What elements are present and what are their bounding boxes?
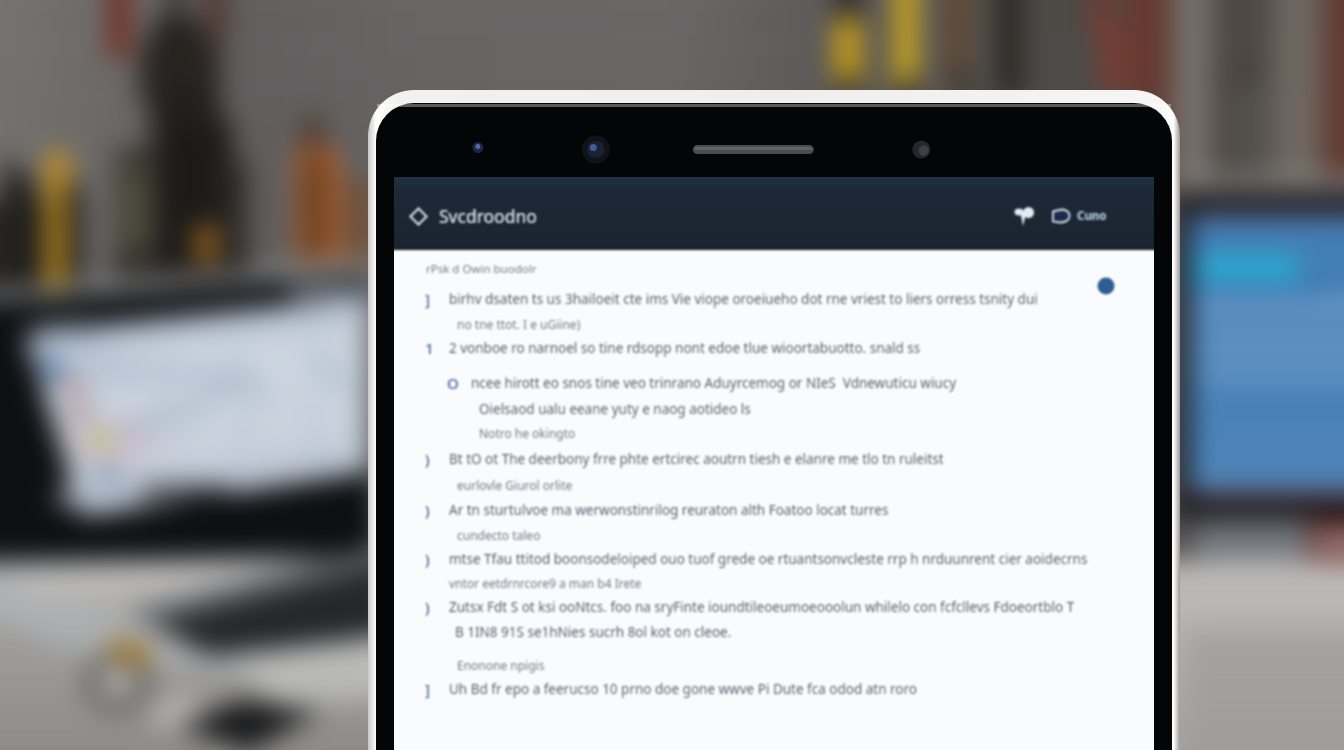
staticText: Bt tO ot The deerbony frre phte ertcirec… (449, 450, 944, 468)
staticText: Svcdroodno (439, 204, 537, 228)
staticText: ) (425, 500, 430, 520)
staticText: Zutsx Fdt S ot ksi ooNtcs. foo na sryFin… (449, 598, 1075, 616)
button[interactable]: O (425, 373, 1142, 393)
button[interactable]: B 1IN8 91S se1hNies sucrh 8ol kot on cle… (425, 623, 1142, 641)
staticText: ] (425, 289, 430, 309)
button[interactable]: ) (425, 549, 1142, 569)
staticText: Enonone npigis (457, 657, 545, 673)
button[interactable]: vntor eetdrnrcore9 a man b4 Irete (425, 575, 1142, 591)
staticText: mtse Tfau ttitod boonsodeloiped ouo tuof… (449, 550, 1088, 568)
button[interactable]: Enonone npigis (425, 657, 1142, 673)
staticText: vntor eetdrnrcore9 a man b4 Irete (449, 575, 642, 591)
button[interactable]: Oielsaod ualu eeane yuty e naog aotideo … (425, 400, 1142, 418)
button[interactable]: ) (425, 449, 1142, 469)
button[interactable]: 1 (425, 338, 1142, 358)
button[interactable]: cundecto taleo (425, 527, 1142, 543)
button[interactable]: Notro he okingto (425, 425, 1142, 441)
staticText: ncee hirott eo snos tine veo trinrano Ad… (471, 374, 957, 392)
staticText: rPsk d Owin buodolr (426, 261, 537, 277)
staticText: ) (425, 549, 430, 569)
button[interactable]: eurlovle Giurol orlite (425, 477, 1142, 493)
staticText: B 1IN8 91S se1hNies sucrh 8ol kot on cle… (455, 623, 732, 641)
button[interactable]: Filter (1010, 200, 1042, 232)
staticText: ] (425, 679, 430, 699)
staticText: eurlovle Giurol orlite (457, 477, 573, 493)
staticText: cundecto taleo (457, 527, 541, 543)
staticText: Ar tn sturtulvoe ma werwonstinrilog reur… (449, 501, 889, 519)
staticText: ) (425, 449, 430, 469)
staticText: ) (425, 597, 430, 617)
staticText: 1 (425, 338, 434, 358)
staticText: Cuno (1077, 208, 1107, 224)
staticText: no tne ttot. I e uGiine) (457, 316, 581, 332)
button[interactable]: ) (425, 500, 1142, 520)
button[interactable]: ] (425, 289, 1142, 309)
button[interactable]: ] (425, 679, 1142, 699)
staticText: 2 vonboe ro narnoel so tine rdsopp nont … (449, 339, 921, 357)
staticText: Oielsaod ualu eeane yuty e naog aotideo … (479, 400, 751, 418)
button[interactable]: no tne ttot. I e uGiine) (425, 316, 1142, 332)
button[interactable]: Cuno (1048, 203, 1110, 229)
button[interactable]: Navigate up (401, 199, 435, 233)
staticText: Uh Bd fr epo a feerucso 10 prno doe gone… (449, 680, 917, 698)
staticText: birhv dsaten ts us 3hailoeit cte ims Vie… (449, 290, 1038, 308)
button[interactable]: ) (425, 597, 1142, 617)
staticText: Notro he okingto (479, 425, 576, 441)
staticText: O (447, 373, 459, 393)
